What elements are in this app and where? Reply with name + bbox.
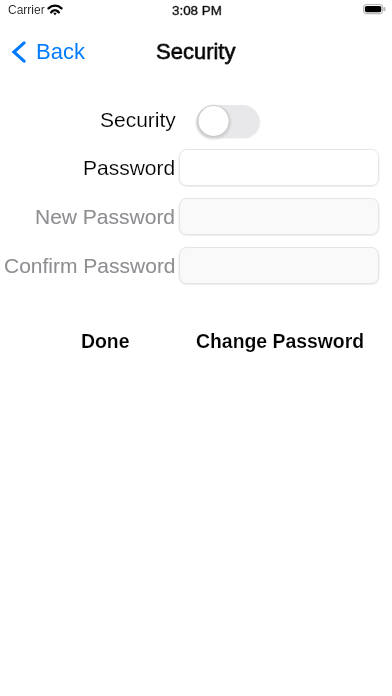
button[interactable]: Back: [6, 36, 91, 64]
staticText: Done: [81, 330, 130, 352]
staticText: Carrier: [8, 3, 45, 16]
button[interactable]: [179, 198, 381, 238]
staticText: Back: [36, 39, 85, 64]
button[interactable]: [179, 149, 381, 189]
staticText: Confirm Password: [4, 254, 176, 277]
staticText: Security: [100, 108, 176, 131]
button[interactable]: Change Password: [194, 327, 366, 355]
staticText: 3:08 PM: [172, 3, 222, 18]
staticText: Security: [156, 39, 236, 64]
staticText: New Password: [35, 205, 176, 228]
button[interactable]: [179, 247, 381, 287]
staticText: Change Password: [196, 330, 365, 352]
button[interactable]: Done: [60, 327, 150, 355]
staticText: Password: [83, 156, 176, 179]
button[interactable]: Security toggle: [197, 103, 261, 139]
staticText: Security: [156, 39, 236, 64]
staticText: 3:08 PM: [172, 3, 222, 18]
